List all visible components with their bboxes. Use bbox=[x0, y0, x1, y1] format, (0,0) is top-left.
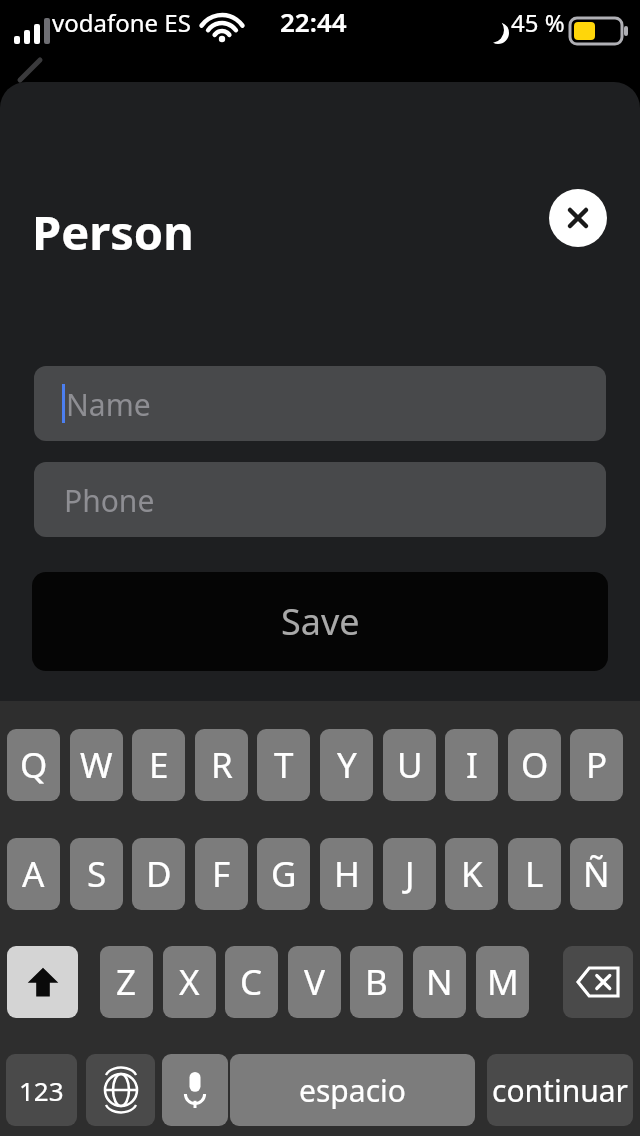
staticText: espacio bbox=[299, 1070, 406, 1111]
staticText: vodafone ES bbox=[52, 6, 191, 39]
button[interactable]: Close bbox=[549, 189, 607, 247]
button[interactable]: J bbox=[383, 838, 436, 910]
button[interactable]: C bbox=[225, 946, 278, 1018]
button[interactable]: Y bbox=[320, 729, 373, 801]
staticText: 123 bbox=[19, 1073, 64, 1108]
button[interactable]: Name bbox=[34, 366, 606, 441]
staticText: W bbox=[80, 741, 113, 789]
staticText: N bbox=[426, 958, 453, 1006]
button[interactable]: T bbox=[257, 729, 310, 801]
staticText: D bbox=[146, 850, 172, 898]
button[interactable]: espacio bbox=[230, 1054, 475, 1126]
staticText: U bbox=[397, 741, 423, 789]
staticText: X bbox=[179, 958, 200, 1006]
staticText: Z bbox=[116, 958, 137, 1006]
staticText: O bbox=[521, 741, 549, 789]
button[interactable]: G bbox=[257, 838, 310, 910]
button[interactable]: Backspace bbox=[563, 946, 633, 1018]
staticText: C bbox=[240, 958, 263, 1006]
button[interactable]: S bbox=[70, 838, 123, 910]
button[interactable]: O bbox=[508, 729, 561, 801]
button[interactable]: Phone bbox=[34, 462, 606, 537]
button[interactable]: Q bbox=[7, 729, 60, 801]
staticText: Person bbox=[32, 200, 194, 264]
staticText: F bbox=[212, 850, 231, 898]
button[interactable]: 123 bbox=[6, 1054, 77, 1126]
button[interactable]: D bbox=[132, 838, 185, 910]
staticText: P bbox=[586, 741, 608, 789]
button[interactable]: Change keyboard language bbox=[86, 1054, 155, 1126]
button[interactable]: L bbox=[508, 838, 561, 910]
staticText: T bbox=[274, 741, 294, 789]
staticText: Ñ bbox=[583, 850, 610, 898]
staticText: I bbox=[466, 741, 478, 789]
staticText: Phone bbox=[64, 480, 155, 521]
button[interactable]: F bbox=[195, 838, 248, 910]
staticText: J bbox=[405, 850, 415, 898]
staticText: K bbox=[461, 850, 483, 898]
button[interactable]: E bbox=[132, 729, 185, 801]
button[interactable]: U bbox=[383, 729, 436, 801]
staticText: V bbox=[304, 958, 326, 1006]
button[interactable]: N bbox=[413, 946, 466, 1018]
button[interactable]: Dictation bbox=[162, 1054, 228, 1126]
staticText: L bbox=[525, 850, 544, 898]
staticText: Q bbox=[20, 741, 48, 789]
staticText: Name bbox=[66, 384, 151, 425]
button[interactable]: K bbox=[445, 838, 498, 910]
button[interactable]: H bbox=[320, 838, 373, 910]
button[interactable]: B bbox=[350, 946, 403, 1018]
button[interactable]: continuar bbox=[487, 1054, 633, 1126]
button[interactable]: Ñ bbox=[570, 838, 623, 910]
staticText: 22:44 bbox=[280, 4, 347, 39]
button[interactable]: V bbox=[288, 946, 341, 1018]
staticText: G bbox=[271, 850, 297, 898]
button[interactable]: Save bbox=[32, 572, 608, 671]
staticText: M bbox=[487, 958, 519, 1006]
button[interactable]: W bbox=[70, 729, 123, 801]
staticText: E bbox=[149, 741, 169, 789]
staticText: R bbox=[211, 741, 233, 789]
button[interactable]: X bbox=[163, 946, 216, 1018]
button[interactable]: M bbox=[476, 946, 529, 1018]
staticText: Y bbox=[337, 741, 357, 789]
button[interactable]: Shift bbox=[7, 946, 78, 1018]
staticText: 45 % bbox=[511, 6, 565, 39]
staticText: A bbox=[22, 850, 45, 898]
staticText: Save bbox=[281, 597, 360, 646]
button[interactable]: P bbox=[570, 729, 623, 801]
staticText: B bbox=[365, 958, 388, 1006]
staticText: S bbox=[87, 850, 107, 898]
staticText: continuar bbox=[492, 1070, 628, 1111]
button[interactable]: R bbox=[195, 729, 248, 801]
staticText: H bbox=[334, 850, 360, 898]
button[interactable]: I bbox=[445, 729, 498, 801]
button[interactable]: A bbox=[7, 838, 60, 910]
button[interactable]: Z bbox=[100, 946, 153, 1018]
